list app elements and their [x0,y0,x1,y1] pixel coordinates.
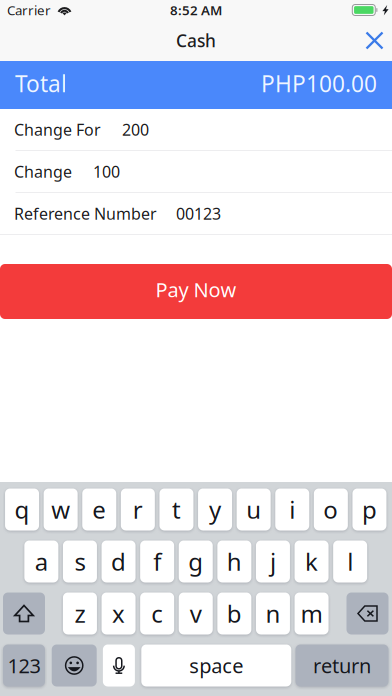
button[interactable]: d [101,540,135,582]
staticText: a [35,546,48,577]
button[interactable]: g [179,540,213,582]
button[interactable]: space [141,644,291,686]
button[interactable]: b [217,592,251,634]
staticText: Pay Now [155,276,236,303]
button[interactable]: s [63,540,97,582]
staticText: b [227,598,242,629]
staticText: s [74,546,85,577]
button[interactable]: i [275,488,309,530]
staticText: Cash [176,29,216,52]
button[interactable]: p [352,488,386,530]
button[interactable]: e [82,488,116,530]
button[interactable]: Close [355,20,392,61]
staticText: o [323,494,338,525]
button[interactable]: z [63,592,97,634]
staticText: j [270,546,276,577]
staticText: 123 [7,652,40,679]
staticText: return [313,652,371,679]
staticText: g [188,546,203,577]
staticText: x [112,598,125,629]
button[interactable]: Delete [346,592,388,634]
staticText: k [305,546,318,577]
staticText: u [246,494,261,525]
staticText: t [172,494,181,525]
button[interactable]: r [121,488,155,530]
button[interactable]: return [295,644,388,686]
staticText: 200 [122,119,149,140]
staticText: w [51,494,70,525]
button[interactable]: y [198,488,232,530]
button[interactable]: w [44,488,78,530]
staticText: n [265,598,280,629]
staticText: d [111,546,126,577]
button[interactable]: o [314,488,348,530]
staticText: c [151,598,163,629]
staticText: y [209,494,221,525]
staticText: Reference Number [14,203,157,224]
staticText: p [362,494,377,525]
staticText: i [289,494,295,525]
staticText: m [300,598,322,629]
button[interactable]: c [140,592,174,634]
button[interactable]: Reference Number [0,193,392,234]
staticText: l [347,546,353,577]
button[interactable]: Pay Now [0,264,392,319]
button[interactable]: Shift [3,592,45,634]
staticText: v [190,598,202,629]
button[interactable]: Change [0,151,392,192]
staticText: Total [15,68,67,98]
staticText: z [74,598,85,629]
button[interactable]: n [256,592,290,634]
button[interactable]: a [24,540,58,582]
staticText: space [189,652,243,679]
staticText: h [227,546,242,577]
staticText: Change For [14,119,101,140]
button[interactable]: q [5,488,39,530]
button[interactable]: u [237,488,271,530]
staticText: q [15,494,30,525]
button[interactable]: Change For [0,109,392,150]
staticText: Carrier [7,1,51,19]
button[interactable]: h [217,540,251,582]
button[interactable]: t [159,488,193,530]
button[interactable]: j [256,540,290,582]
button[interactable]: Dictate [103,644,135,686]
button[interactable]: m [294,592,328,634]
staticText: r [133,494,143,525]
button[interactable]: f [140,540,174,582]
staticText: 100 [93,161,120,182]
button[interactable]: l [333,540,367,582]
staticText: PHP100.00 [261,68,377,98]
staticText: f [153,546,161,577]
button[interactable]: x [101,592,135,634]
staticText: e [92,494,106,525]
staticText: 00123 [176,203,221,224]
button[interactable]: 123 [3,644,45,686]
staticText: Change [14,161,72,182]
staticText: 8:52 AM [170,1,222,19]
button[interactable]: k [294,540,328,582]
button[interactable]: v [179,592,213,634]
button[interactable]: Emoji [52,644,97,686]
